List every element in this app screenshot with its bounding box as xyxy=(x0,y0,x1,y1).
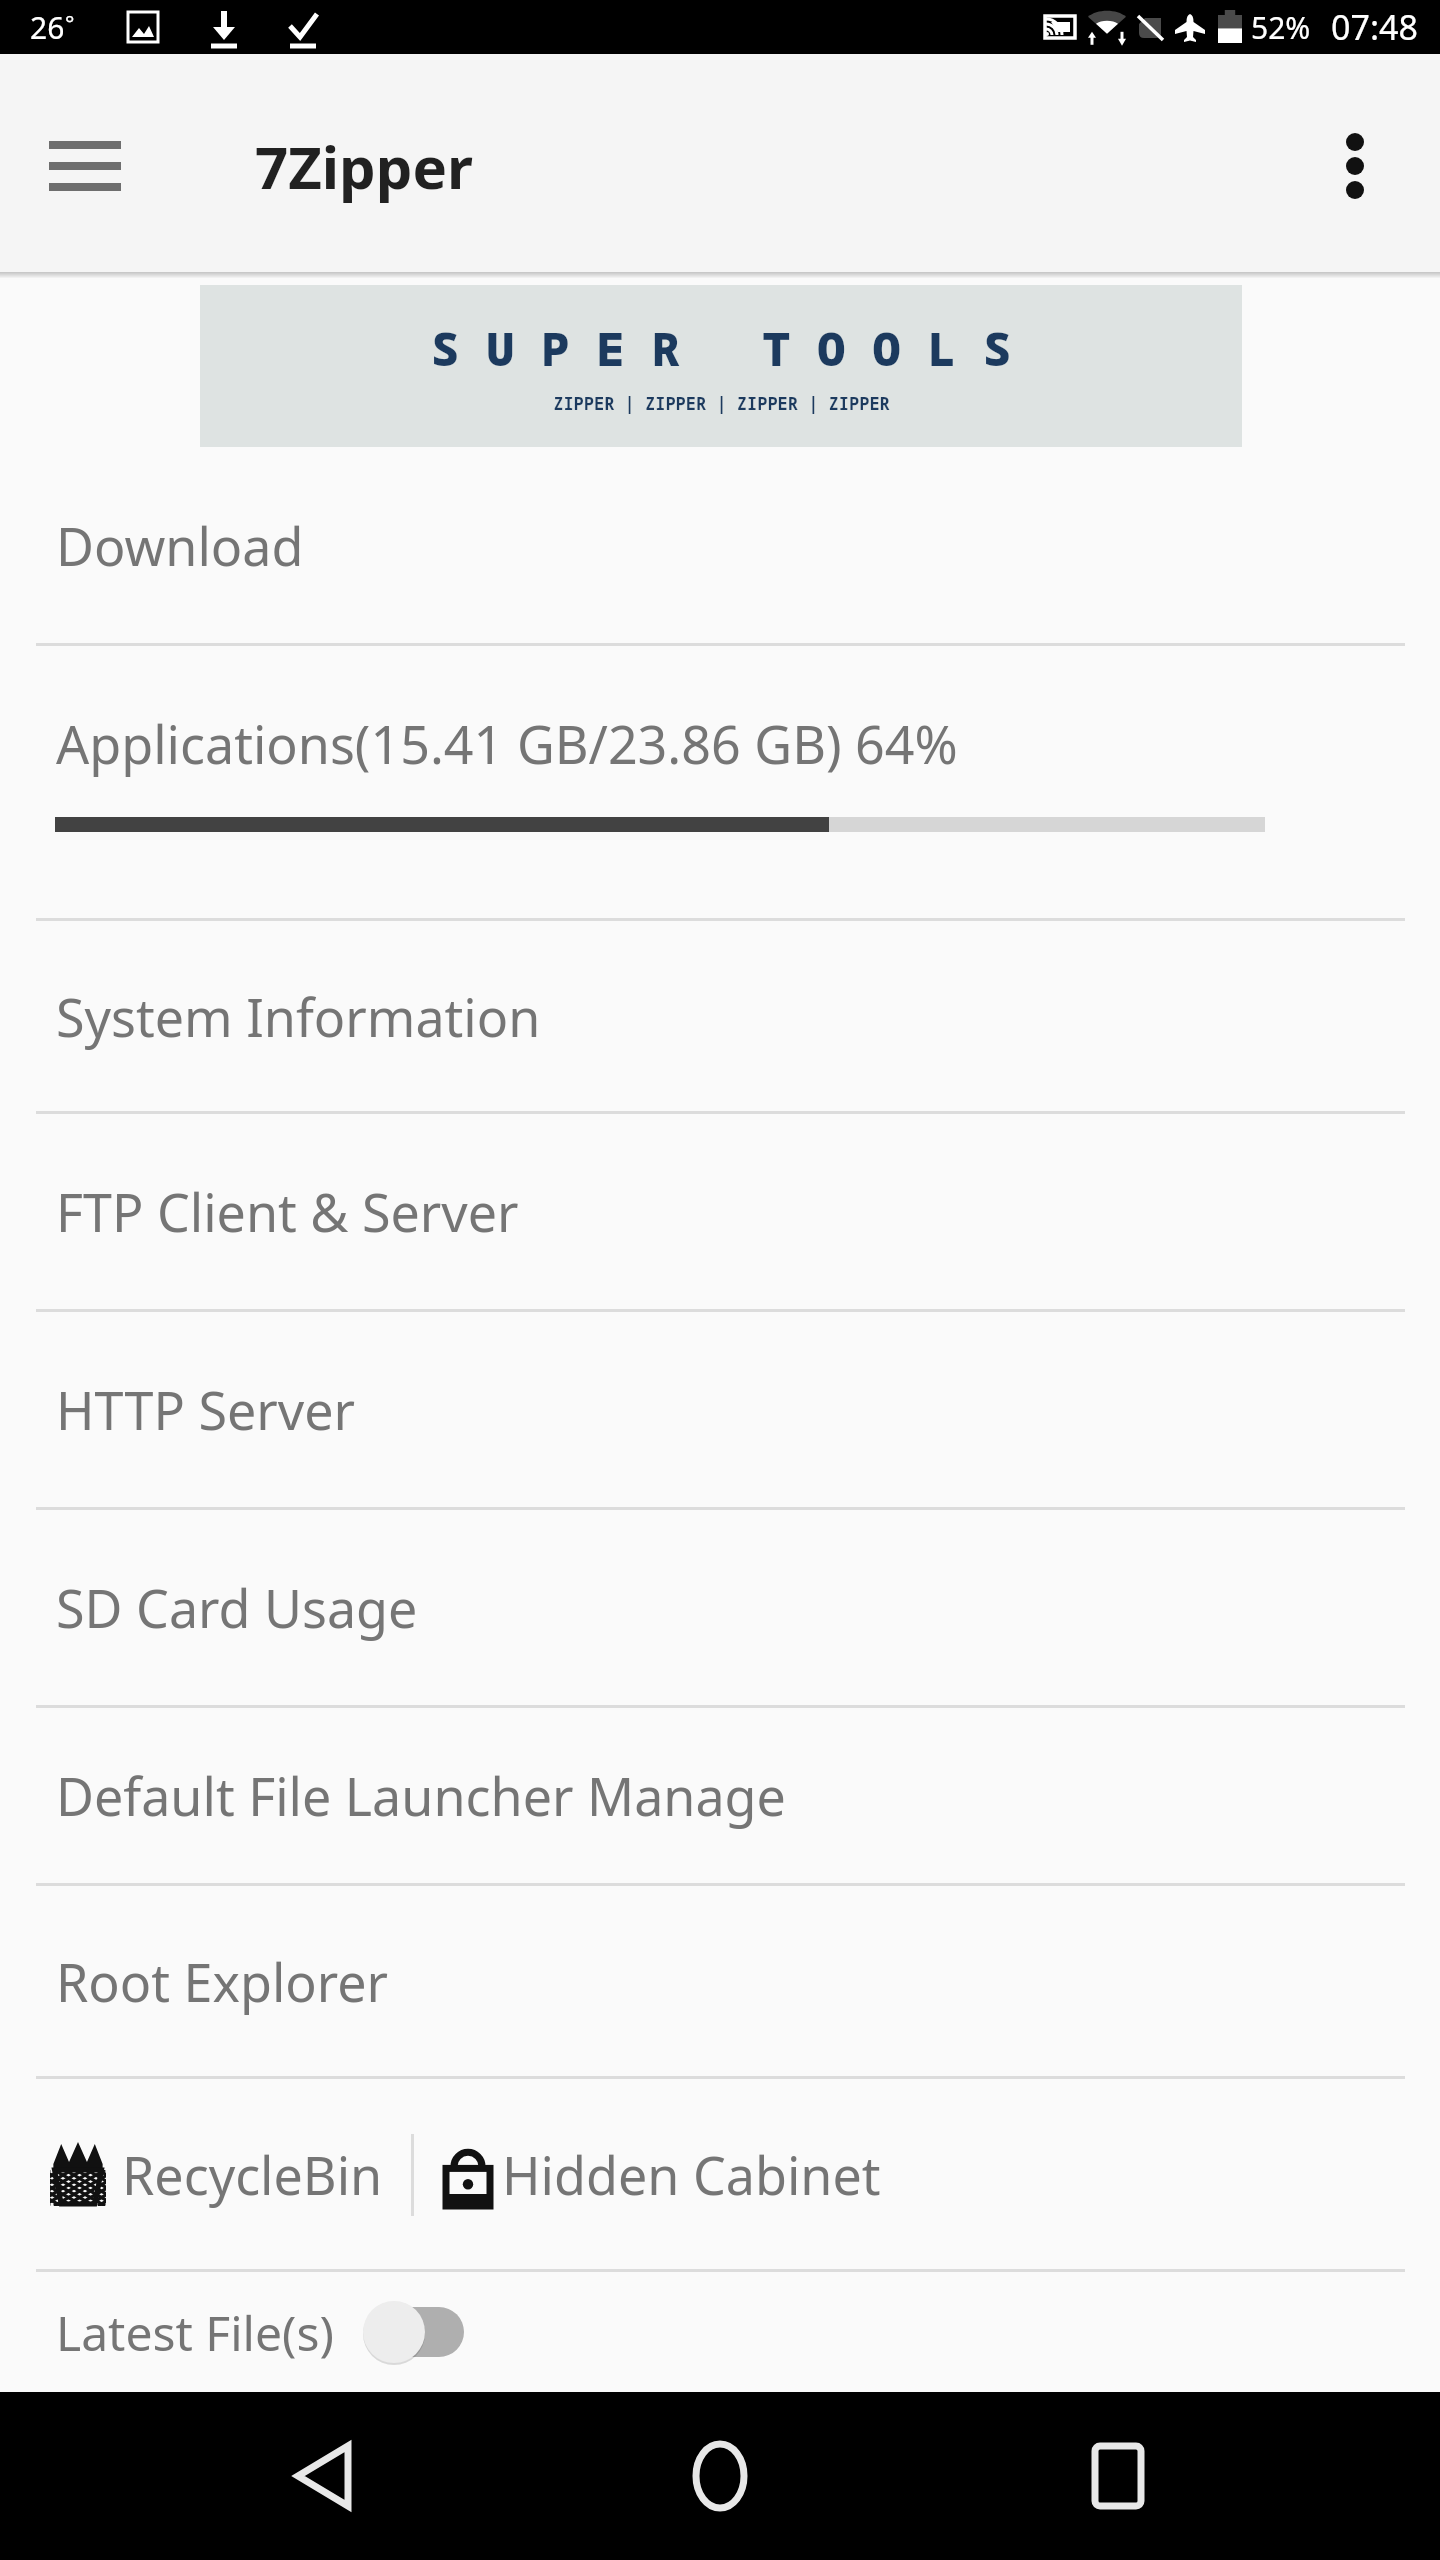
staticText: 07:48 xyxy=(1331,4,1418,50)
staticText: FTP Client & Server xyxy=(56,1176,519,1247)
button[interactable]: More options xyxy=(1300,111,1410,221)
staticText: ° xyxy=(65,7,75,37)
button[interactable]: Hidden Cabinet xyxy=(428,2121,895,2228)
staticText: RecycleBin xyxy=(122,2139,383,2210)
button[interactable]: RecycleBin xyxy=(36,2121,397,2228)
button[interactable]: Applications(15.41 GB/23.86 GB) 64% xyxy=(0,646,1440,918)
staticText: Hidden Cabinet xyxy=(502,2139,881,2210)
staticText: Applications(15.41 GB/23.86 GB) 64% xyxy=(56,708,958,779)
staticText: Root Explorer xyxy=(56,1946,389,2017)
staticText: Default File Launcher Manage xyxy=(56,1760,786,1831)
button[interactable]: Home xyxy=(645,2401,795,2551)
button[interactable]: FTP Client & Server xyxy=(0,1114,1440,1309)
button[interactable]: Open navigation menu xyxy=(30,111,140,221)
button[interactable]: HTTP Server xyxy=(0,1312,1440,1507)
staticText: System Information xyxy=(56,981,541,1052)
button[interactable]: SD Card Usage xyxy=(0,1510,1440,1705)
button[interactable]: Latest files toggle, off xyxy=(360,2297,480,2367)
staticText: HTTP Server xyxy=(56,1374,355,1445)
staticText: SD Card Usage xyxy=(56,1572,418,1643)
button[interactable]: Back xyxy=(248,2401,398,2551)
button[interactable]: Recent apps xyxy=(1043,2401,1193,2551)
staticText: Download xyxy=(56,510,304,581)
button[interactable]: Super Tools advertisement xyxy=(200,285,1242,447)
staticText: ZIPPER | ZIPPER | ZIPPER | ZIPPER xyxy=(553,392,890,415)
button[interactable]: Root Explorer xyxy=(0,1886,1440,2076)
button[interactable]: Default File Launcher Manage xyxy=(0,1708,1440,1883)
staticText: S U P E R T O O L S xyxy=(431,317,1011,380)
staticText: 26 xyxy=(30,7,65,48)
staticText: 52% xyxy=(1251,7,1311,48)
staticText: 7Zipper xyxy=(255,127,473,206)
button[interactable]: Download xyxy=(0,447,1440,643)
staticText: Latest File(s) xyxy=(56,2300,334,2365)
button[interactable]: System Information xyxy=(0,921,1440,1111)
